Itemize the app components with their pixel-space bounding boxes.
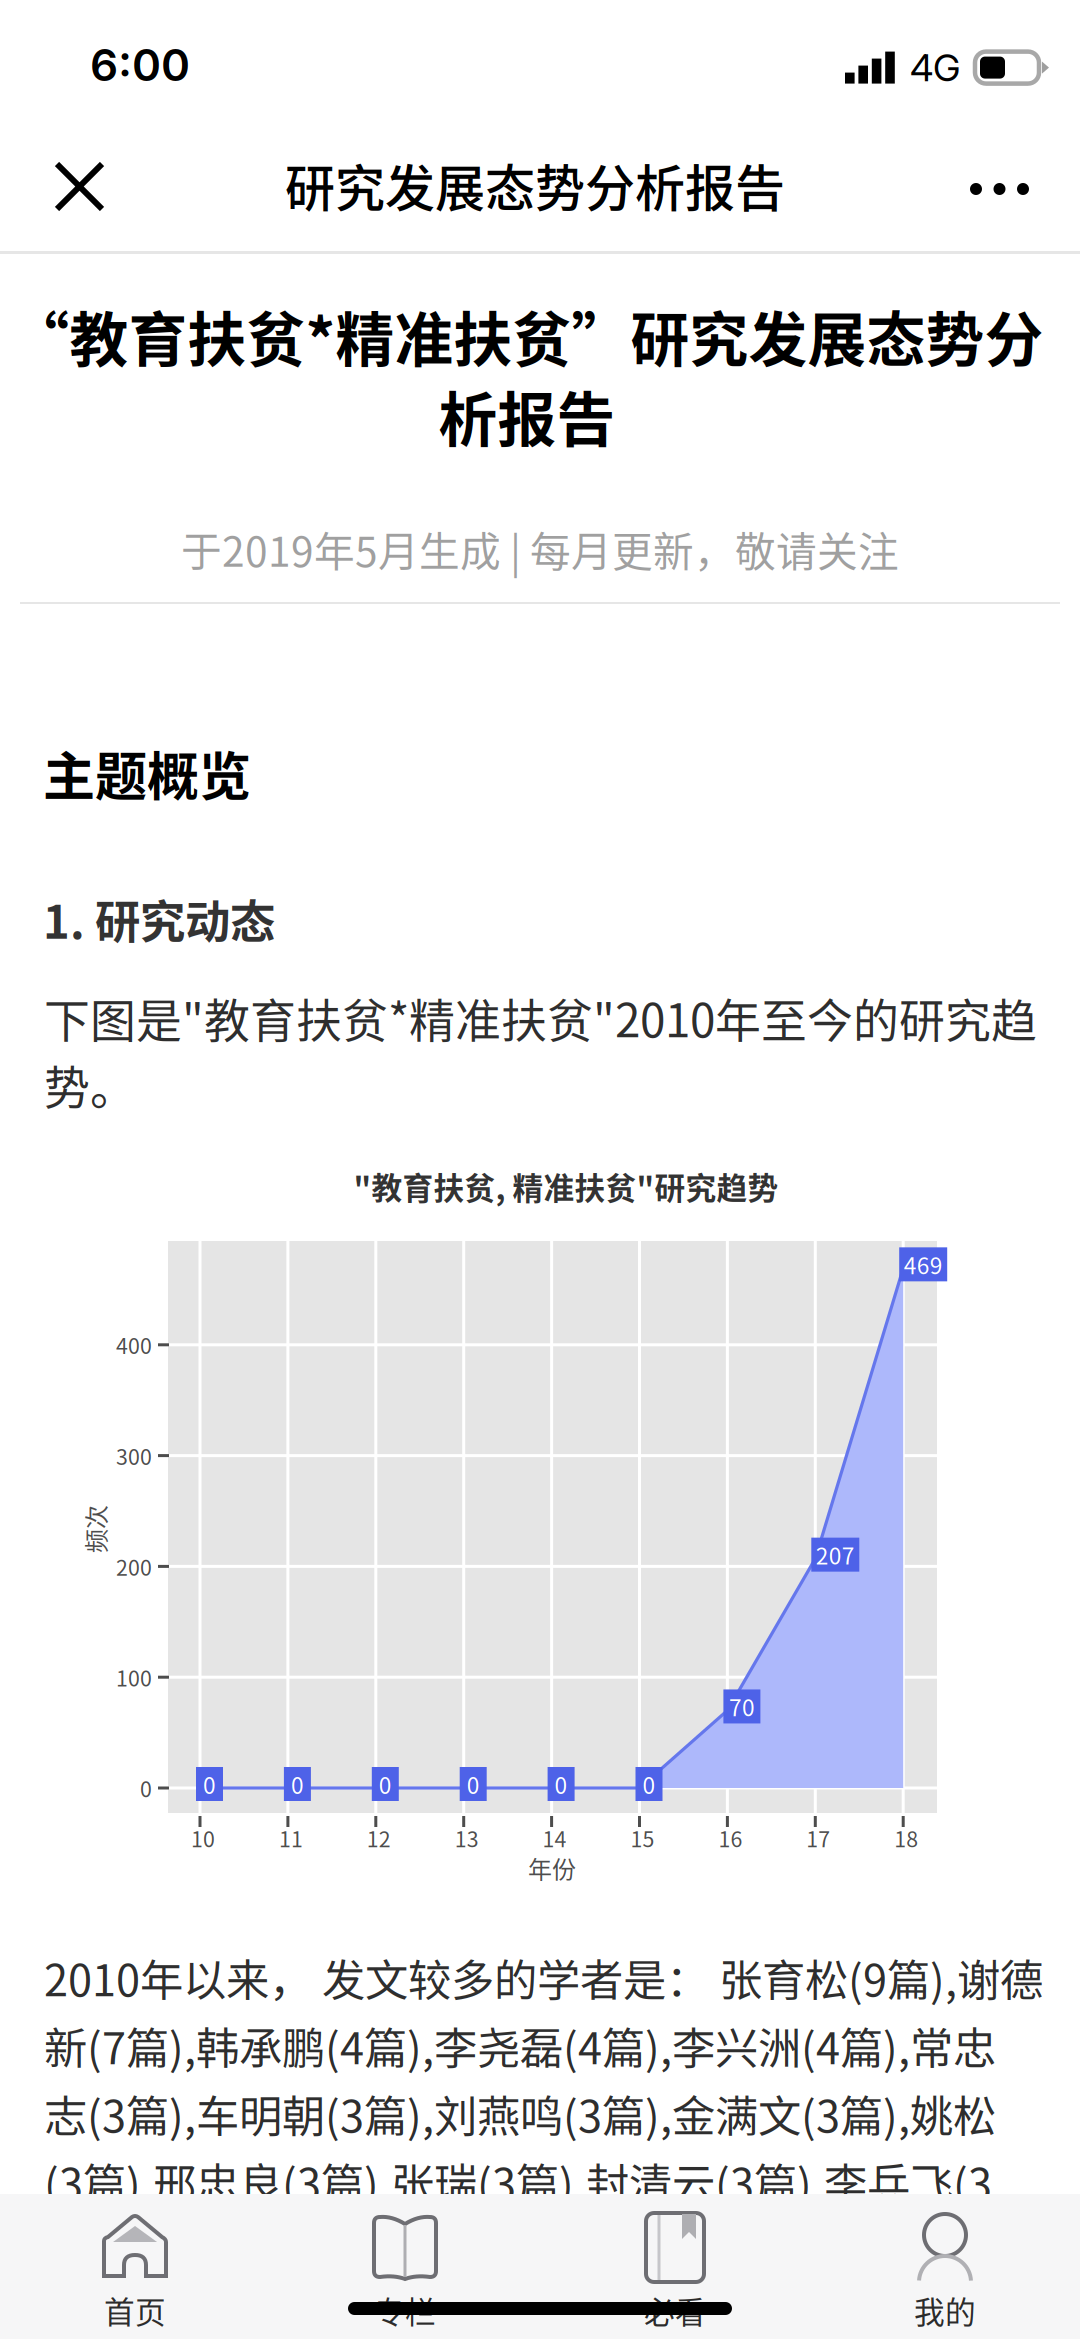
staticText: 0 [555, 1768, 568, 1800]
staticText: 11 [279, 1823, 303, 1853]
button[interactable]: 必看 [540, 2194, 810, 2339]
staticText: 下图是"教育扶贫*精准扶贫"2010年至今的研究趋 [44, 984, 1037, 1050]
staticText: 志(3篇),车明朝(3篇),刘燕鸣(3篇),金满文(3篇),姚松 [44, 2082, 996, 2145]
staticText: 400 [116, 1329, 152, 1360]
staticText: 首页 [104, 2288, 166, 2332]
staticText: 主题概览 [43, 735, 251, 811]
staticText: 13 [455, 1823, 479, 1853]
staticText: 15 [630, 1823, 654, 1853]
staticText: 207 [816, 1538, 855, 1571]
staticText: 18 [894, 1823, 918, 1853]
staticText: "教育扶贫, 精准扶贫"研究趋势 [353, 1164, 778, 1208]
staticText: 2010年以来， 发文较多的学者是： 张育松(9篇),谢德 [44, 1946, 1043, 2009]
staticText: 0 [642, 1768, 655, 1800]
staticText: 70 [729, 1690, 755, 1723]
staticText: 14 [543, 1823, 567, 1853]
button[interactable]: 首页 [0, 2194, 270, 2339]
button[interactable]: More options [930, 126, 1080, 244]
staticText: 300 [116, 1440, 152, 1471]
staticText: 0 [140, 1773, 152, 1803]
staticText: 1. 研究动态 [43, 886, 275, 952]
staticText: 12 [367, 1823, 391, 1853]
staticText: 17 [806, 1823, 830, 1853]
staticText: 于2019年5月生成 | 每月更新，敬请关注 [181, 520, 899, 578]
staticText: (3篇),邢忠良(3篇),张瑞(3篇),封清云(3篇),李兵飞(3 [44, 2150, 992, 2213]
staticText: 0 [203, 1768, 216, 1800]
button[interactable]: 专栏 [270, 2194, 540, 2339]
staticText: 专栏 [374, 2288, 436, 2332]
staticText: 469 [904, 1248, 943, 1281]
staticText: 我的 [914, 2288, 976, 2332]
staticText: 0 [467, 1768, 480, 1800]
staticText: 频次 [71, 1512, 119, 1546]
staticText: 必看 [644, 2288, 706, 2332]
button[interactable]: Close [0, 126, 149, 244]
staticText: 16 [718, 1823, 742, 1853]
staticText: 势。 [44, 1051, 136, 1117]
staticText: 研究发展态势分析报告 [285, 149, 785, 221]
staticText: 0 [379, 1768, 392, 1800]
staticText: 0 [291, 1768, 304, 1800]
staticText: 100 [116, 1662, 152, 1693]
staticText: 4G [910, 45, 960, 90]
staticText: 新(7篇),韩承鹏(4篇),李尧磊(4篇),李兴洲(4篇),常忠 [44, 2014, 996, 2077]
staticText: 10 [191, 1823, 215, 1853]
button[interactable]: 我的 [810, 2194, 1080, 2339]
staticText: 6:00 [90, 38, 190, 92]
staticText: 200 [116, 1551, 152, 1582]
staticText: “教育扶贫*精准扶贫”研究发展态势分 [10, 293, 1043, 378]
staticText: 年份 [528, 1851, 576, 1885]
staticText: 析报告 [438, 373, 615, 458]
